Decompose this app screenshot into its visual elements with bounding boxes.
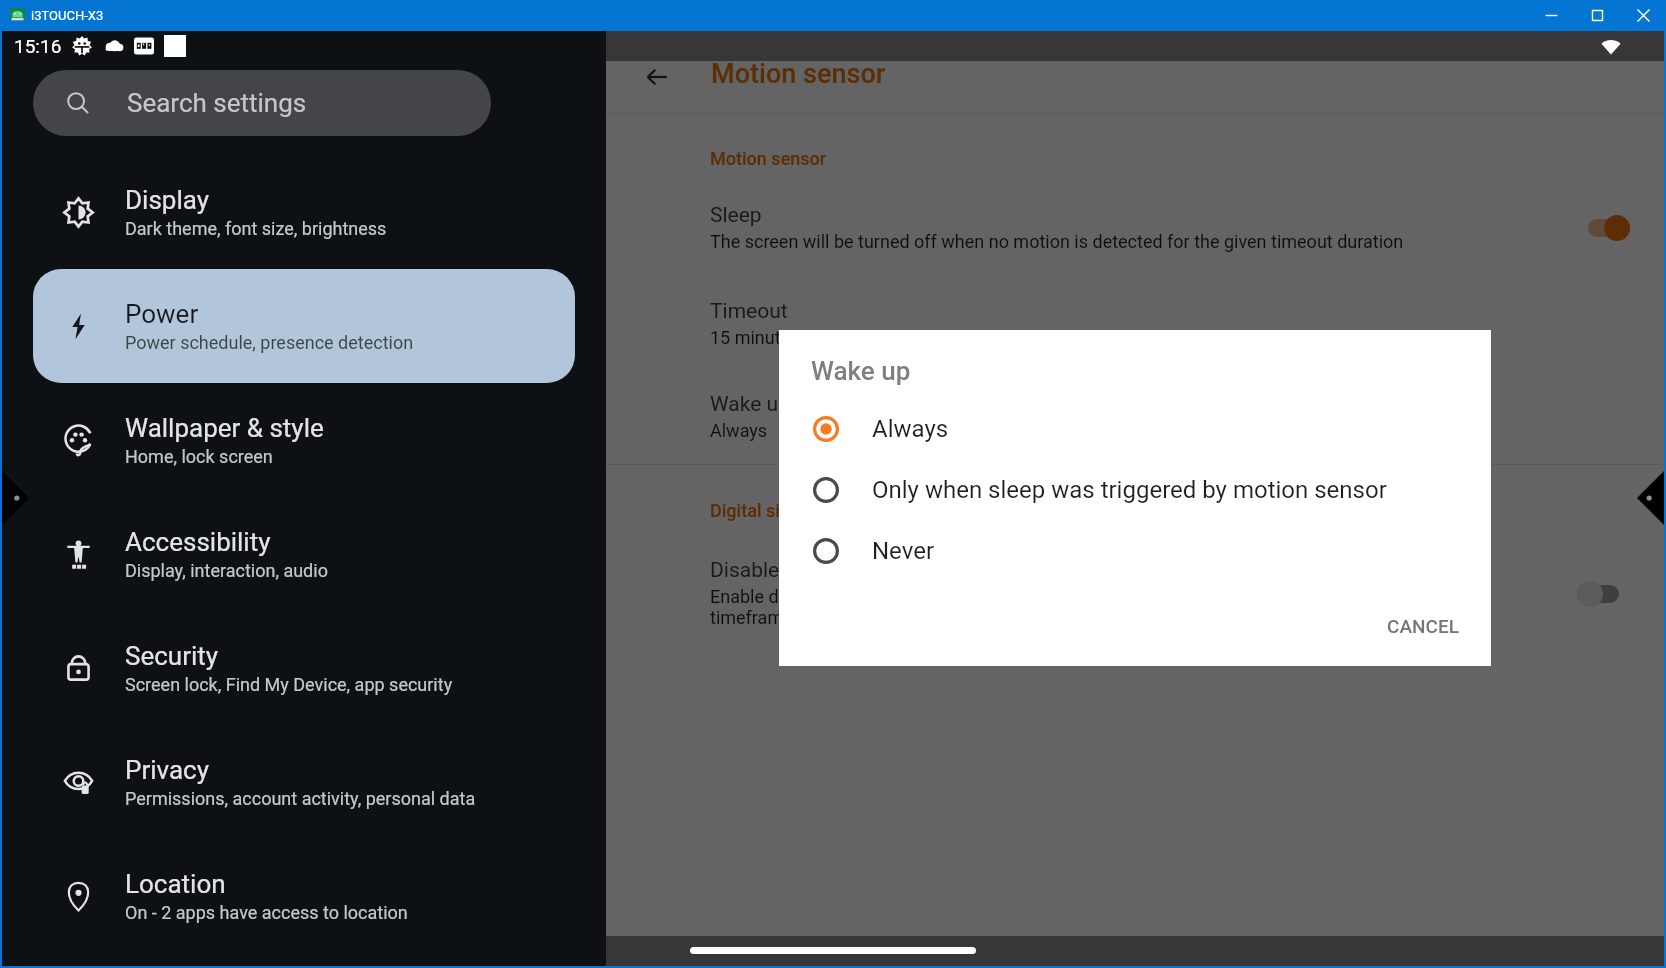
staticText: Never <box>872 537 935 565</box>
button[interactable]: Toggle <box>1588 212 1630 244</box>
staticText: Disable sleep <box>710 558 835 583</box>
staticText: Wake up <box>811 356 911 386</box>
staticText: The screen will be turned off when no mo… <box>710 231 1404 252</box>
button[interactable]: Close <box>1620 0 1666 31</box>
staticText: Only when sleep was triggered by motion … <box>872 476 1387 504</box>
staticText: i3TOUCH-X3 <box>31 8 104 23</box>
button[interactable]: Security <box>33 611 575 725</box>
button[interactable]: Disable sleep <box>710 558 1630 629</box>
staticText: 15 minutes <box>710 327 800 348</box>
staticText: CANCEL <box>1387 615 1459 637</box>
staticText: Dark theme, font size, brightness <box>125 218 387 239</box>
button[interactable]: Toggle <box>1577 578 1619 610</box>
button[interactable]: Only when sleep was triggered by motion … <box>779 459 1491 520</box>
button[interactable]: Search settings <box>33 70 491 136</box>
staticText: Display, interaction, audio <box>125 560 328 581</box>
staticText: Security <box>125 641 219 671</box>
button[interactable]: Always <box>779 398 1491 459</box>
button[interactable]: Back <box>642 62 672 92</box>
staticText: Motion sensor <box>711 58 886 90</box>
staticText: Motion sensor <box>710 148 827 169</box>
staticText: Accessibility <box>125 527 271 557</box>
button[interactable]: Minimize <box>1528 0 1574 31</box>
staticText: Always <box>872 415 949 443</box>
button[interactable]: Display <box>33 155 575 269</box>
staticText: Power schedule, presence detection <box>125 332 414 353</box>
button[interactable]: Location <box>33 839 575 953</box>
button[interactable]: CANCEL <box>1371 603 1475 649</box>
button[interactable]: Accessibility <box>33 497 575 611</box>
staticText: Screen lock, Find My Device, app securit… <box>125 674 453 695</box>
button[interactable]: Maximize <box>1574 0 1620 31</box>
staticText: 15:16 <box>14 35 62 57</box>
staticText: Always <box>710 420 768 441</box>
staticText: Location <box>125 869 226 899</box>
staticText: Wake up <box>710 392 790 417</box>
button[interactable]: Timeout <box>710 299 1630 348</box>
staticText: Display <box>125 185 209 215</box>
staticText: Search settings <box>127 88 307 118</box>
staticText: On - 2 apps have access to location <box>125 902 408 923</box>
button[interactable]: Wake up <box>710 392 1630 441</box>
staticText: Privacy <box>125 755 209 785</box>
staticText: Digital signage <box>710 500 830 521</box>
button[interactable]: Privacy <box>33 725 575 839</box>
button[interactable]: Sleep <box>710 203 1630 252</box>
staticText: Enable digital signage mode to disable t… <box>710 586 1096 629</box>
button[interactable]: Wallpaper & style <box>33 383 575 497</box>
button[interactable]: Never <box>779 520 1491 581</box>
staticText: Timeout <box>710 299 788 324</box>
staticText: Power <box>125 299 199 329</box>
staticText: Home, lock screen <box>125 446 273 467</box>
button[interactable]: Power <box>33 269 575 383</box>
staticText: Permissions, account activity, personal … <box>125 788 476 809</box>
staticText: Wallpaper & style <box>125 413 324 443</box>
staticText: Sleep <box>710 203 762 228</box>
